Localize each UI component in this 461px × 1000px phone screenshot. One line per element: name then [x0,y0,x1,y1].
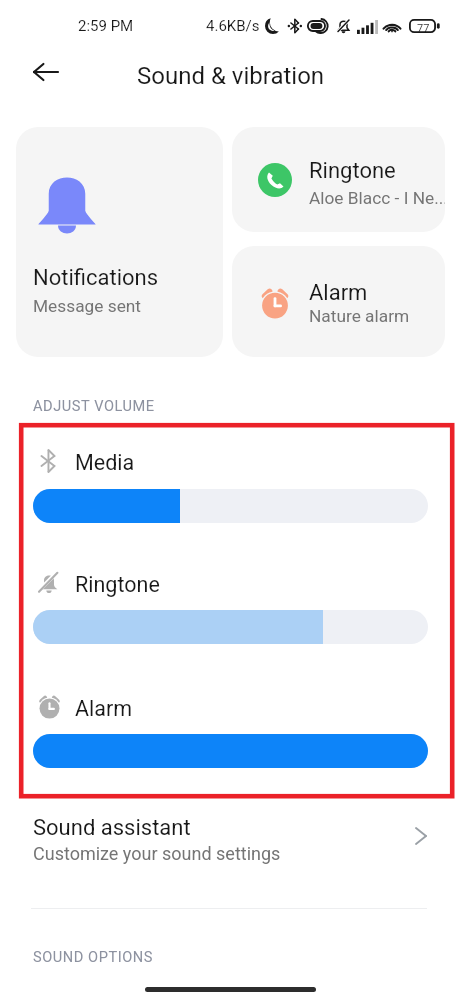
staticText: Message sent [33,296,142,316]
staticText: Alarm [309,280,368,306]
button[interactable]: Alarm [232,246,445,357]
staticText: Aloe Blacc - I Ne... [309,188,445,208]
staticText: Notifications [33,265,159,291]
button[interactable] [33,489,428,523]
staticText: Sound assistant [33,815,191,841]
button[interactable]: Notifications [16,127,223,357]
staticText: 4.6KB/s [206,17,260,35]
staticText: ADJUST VOLUME [33,397,155,414]
staticText: Sound & vibration [137,62,325,90]
button[interactable]: Sound assistant [0,808,461,864]
staticText: 2:59 PM [78,17,134,35]
staticText: Ringtone [75,572,160,597]
button[interactable] [33,610,428,644]
other: Alarm icon [38,695,57,719]
staticText: Nature alarm [309,306,410,326]
staticText: Media [75,450,135,475]
other: Ringtone icon [38,571,57,595]
button[interactable]: Ringtone [232,127,445,232]
staticText: 77 [417,22,430,35]
button[interactable] [33,734,428,768]
button[interactable]: Back [26,52,66,92]
staticText: Customize your sound settings [33,843,281,864]
staticText: Alarm [75,696,133,721]
other: Media icon [38,449,57,473]
staticText: SOUND OPTIONS [33,948,153,965]
staticText: Ringtone [309,158,396,184]
